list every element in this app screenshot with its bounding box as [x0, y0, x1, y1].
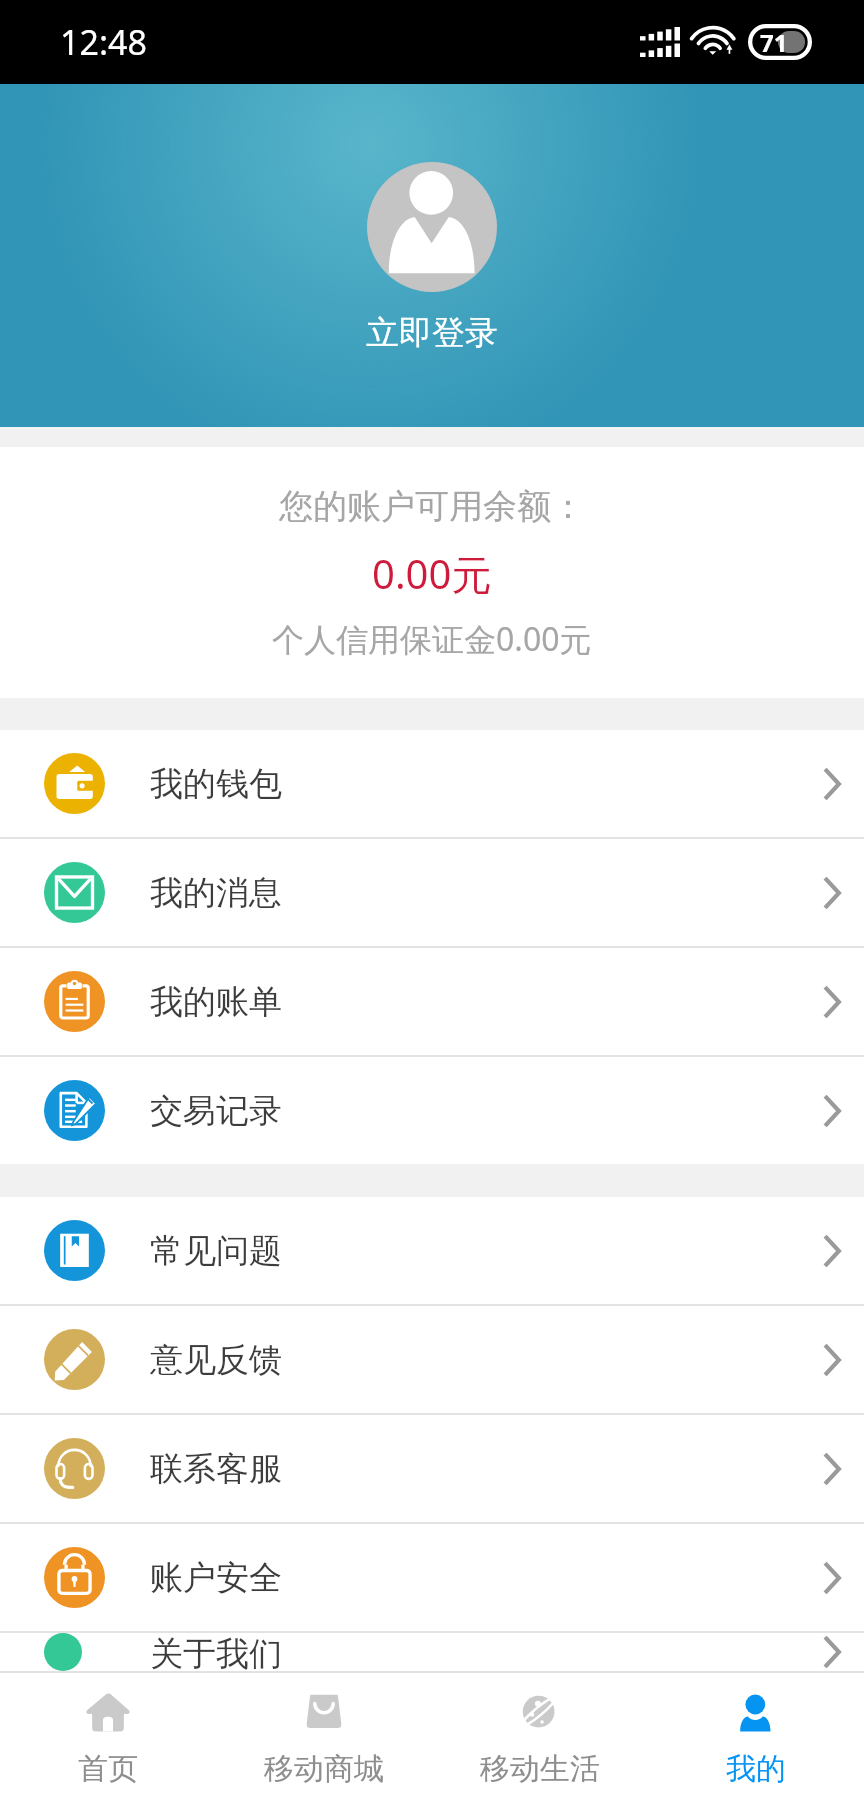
staticText: 关于我们: [150, 1633, 282, 1671]
staticText: 账户安全: [150, 1557, 282, 1599]
button[interactable]: 我的账单: [0, 948, 864, 1055]
staticText: 意见反馈: [150, 1339, 282, 1381]
staticText: 交易记录: [150, 1090, 282, 1132]
staticText: 移动生活: [480, 1750, 600, 1788]
staticText: 您的账户可用余额：: [279, 485, 585, 528]
button[interactable]: 账户安全: [0, 1524, 864, 1631]
staticText: 个人信用保证金0.00元: [272, 617, 592, 661]
staticText: 0.00元: [372, 546, 492, 601]
button[interactable]: 常见问题: [0, 1197, 864, 1304]
staticText: 移动商城: [264, 1750, 384, 1788]
button[interactable]: 意见反馈: [0, 1306, 864, 1413]
staticText: 我的消息: [150, 872, 282, 914]
staticText: 联系客服: [150, 1448, 282, 1490]
staticText: 立即登录: [366, 312, 498, 354]
staticText: 我的钱包: [150, 763, 282, 805]
button[interactable]: 联系客服: [0, 1415, 864, 1522]
button[interactable]: 我的: [648, 1673, 864, 1798]
button[interactable]: 我的消息: [0, 839, 864, 946]
staticText: 我的: [726, 1750, 786, 1788]
staticText: 我的账单: [150, 981, 282, 1023]
button[interactable]: 首页: [0, 1673, 216, 1798]
staticText: 71: [760, 26, 788, 59]
button[interactable]: 移动商城: [216, 1673, 432, 1798]
staticText: 常见问题: [150, 1230, 282, 1272]
button[interactable]: 移动生活: [432, 1673, 648, 1798]
button[interactable]: 关于我们: [0, 1633, 864, 1671]
button[interactable]: 我的钱包: [0, 730, 864, 837]
button[interactable]: 立即登录: [0, 84, 864, 427]
staticText: 首页: [78, 1750, 138, 1788]
button[interactable]: 交易记录: [0, 1057, 864, 1164]
staticText: 12:48: [60, 19, 147, 65]
